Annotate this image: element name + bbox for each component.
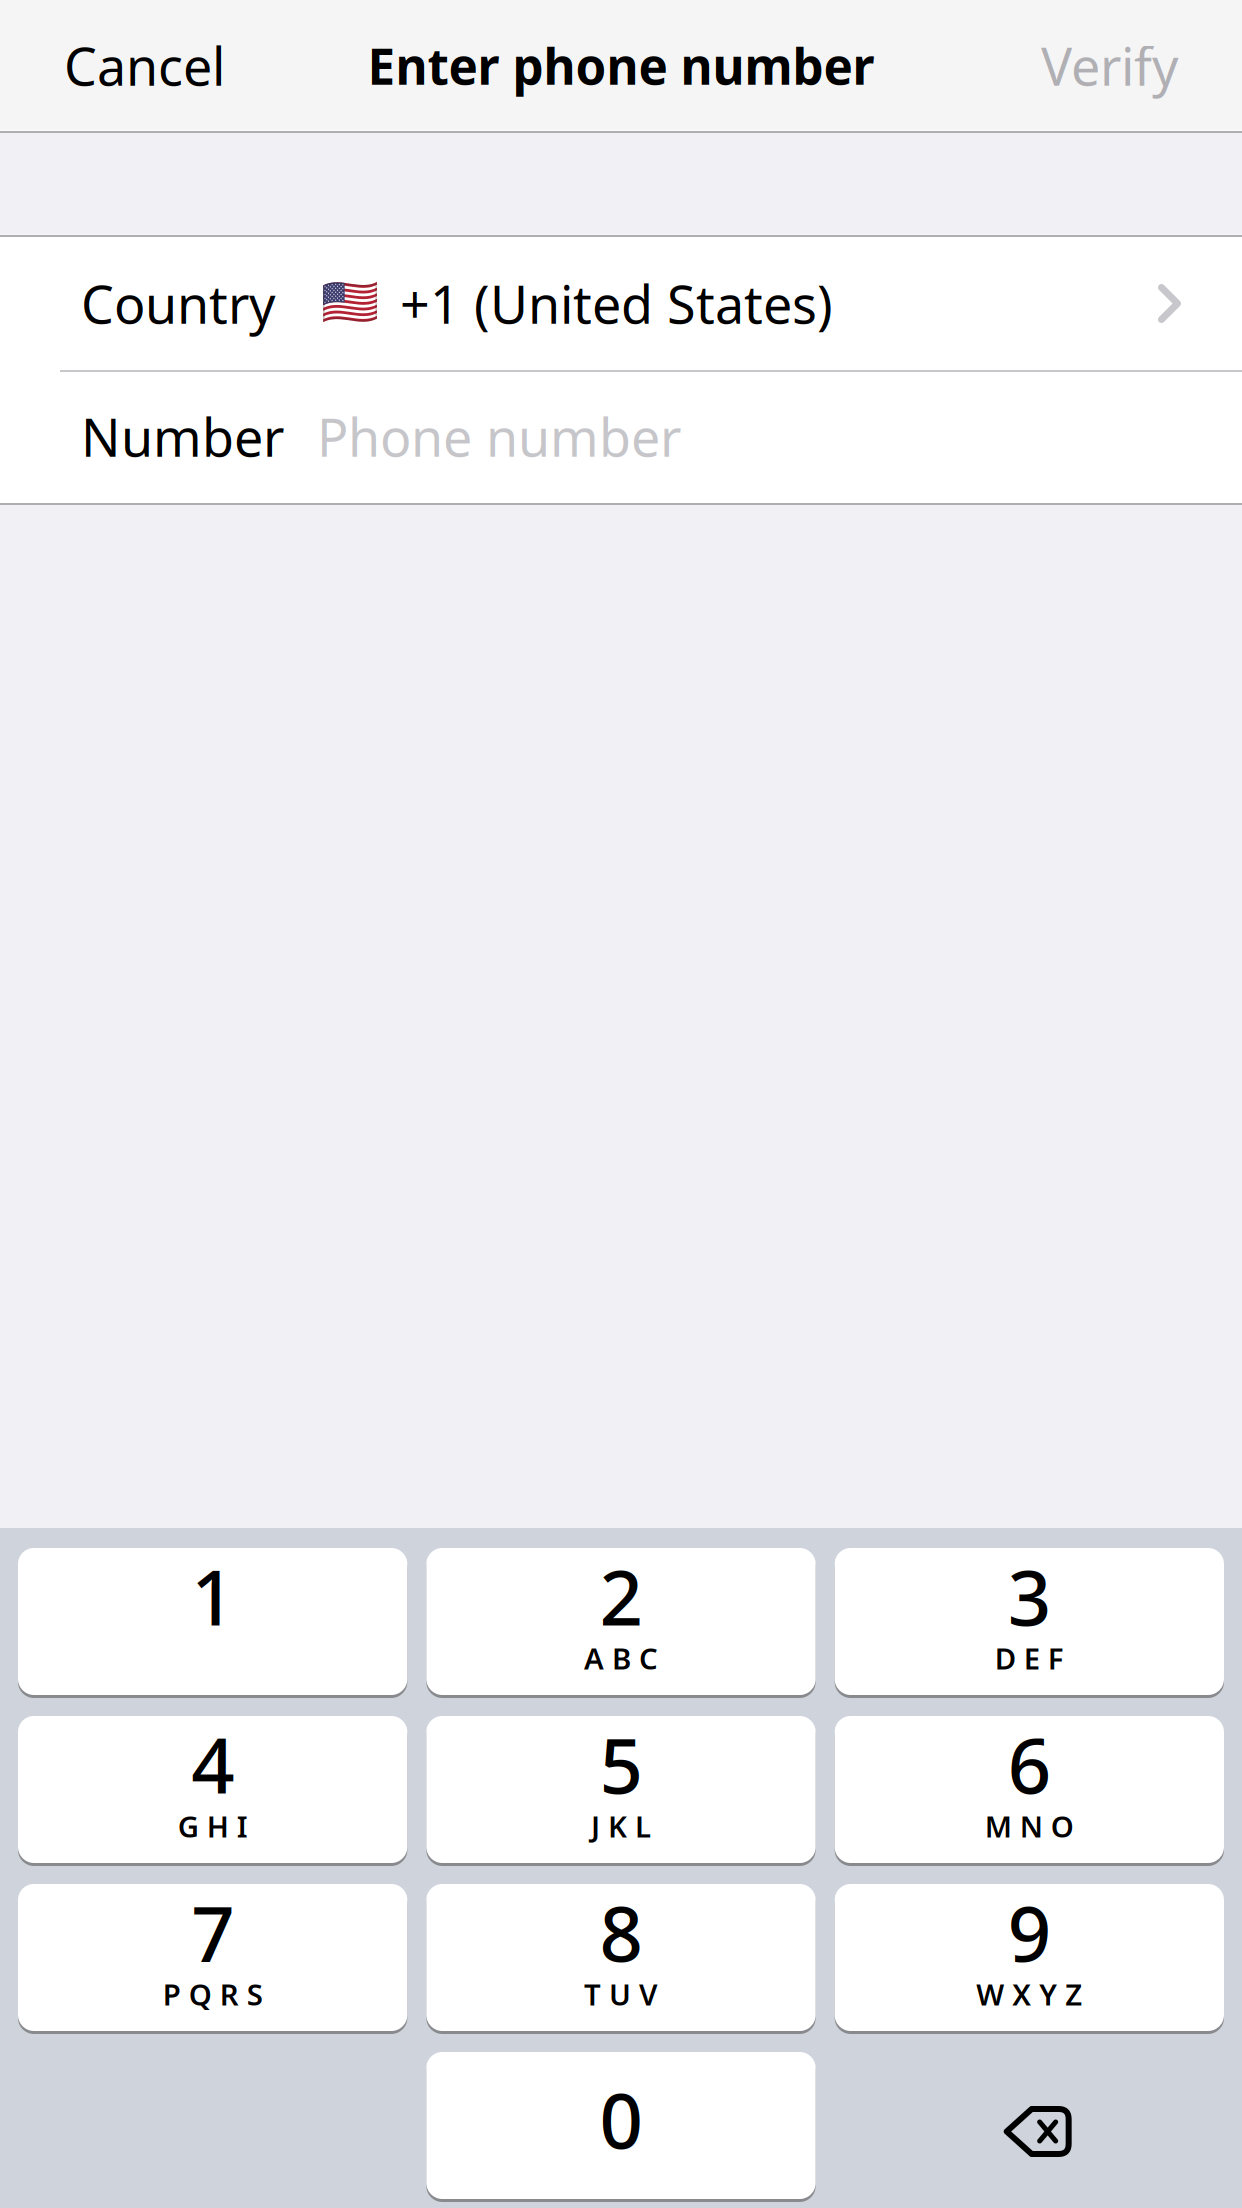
staticText: J K L bbox=[591, 1806, 651, 1845]
staticText: 1 bbox=[191, 1545, 234, 1646]
staticText: Phone number bbox=[317, 402, 681, 471]
staticText: 3 bbox=[1008, 1545, 1051, 1646]
staticText: A B C bbox=[584, 1638, 658, 1677]
staticText: M N O bbox=[985, 1806, 1074, 1845]
button[interactable]: Country bbox=[0, 237, 1242, 370]
staticText: Cancel bbox=[64, 31, 225, 100]
button[interactable]: Cancel bbox=[0, 0, 284, 131]
button[interactable]: 7 bbox=[18, 1884, 407, 2031]
button[interactable]: 4 bbox=[18, 1716, 407, 1863]
button[interactable]: Delete bbox=[835, 2052, 1224, 2199]
staticText: 8 bbox=[599, 1881, 642, 1982]
button[interactable]: 0 bbox=[426, 2052, 816, 2199]
staticText: Enter phone number bbox=[367, 33, 874, 98]
staticText: +1 (United States) bbox=[400, 269, 833, 338]
button[interactable]: 9 bbox=[835, 1884, 1224, 2031]
staticText: 5 bbox=[599, 1713, 642, 1814]
staticText: 🇺🇸 bbox=[321, 276, 379, 329]
staticText: Verify bbox=[1041, 31, 1179, 100]
button[interactable]: Number bbox=[0, 370, 1242, 503]
button[interactable]: 3 bbox=[835, 1548, 1224, 1695]
staticText: Number bbox=[81, 402, 284, 471]
staticText: 7 bbox=[191, 1881, 234, 1982]
staticText: 0 bbox=[599, 2068, 642, 2169]
staticText: T U V bbox=[584, 1974, 658, 2013]
staticText: G H I bbox=[178, 1806, 248, 1845]
staticText: 4 bbox=[191, 1713, 234, 1814]
button[interactable]: 5 bbox=[426, 1716, 816, 1863]
staticText: D E F bbox=[995, 1638, 1064, 1677]
button[interactable]: 8 bbox=[426, 1884, 816, 2031]
staticText: W X Y Z bbox=[976, 1974, 1082, 2013]
staticText: Country bbox=[81, 269, 276, 338]
button[interactable]: 2 bbox=[426, 1548, 816, 1695]
button[interactable]: Verify bbox=[959, 0, 1242, 131]
button[interactable]: 1 bbox=[18, 1548, 407, 1695]
staticText: 9 bbox=[1008, 1881, 1051, 1982]
button[interactable]: 6 bbox=[835, 1716, 1224, 1863]
staticText: 2 bbox=[599, 1545, 642, 1646]
staticText: P Q R S bbox=[163, 1974, 263, 2013]
staticText: 6 bbox=[1008, 1713, 1051, 1814]
